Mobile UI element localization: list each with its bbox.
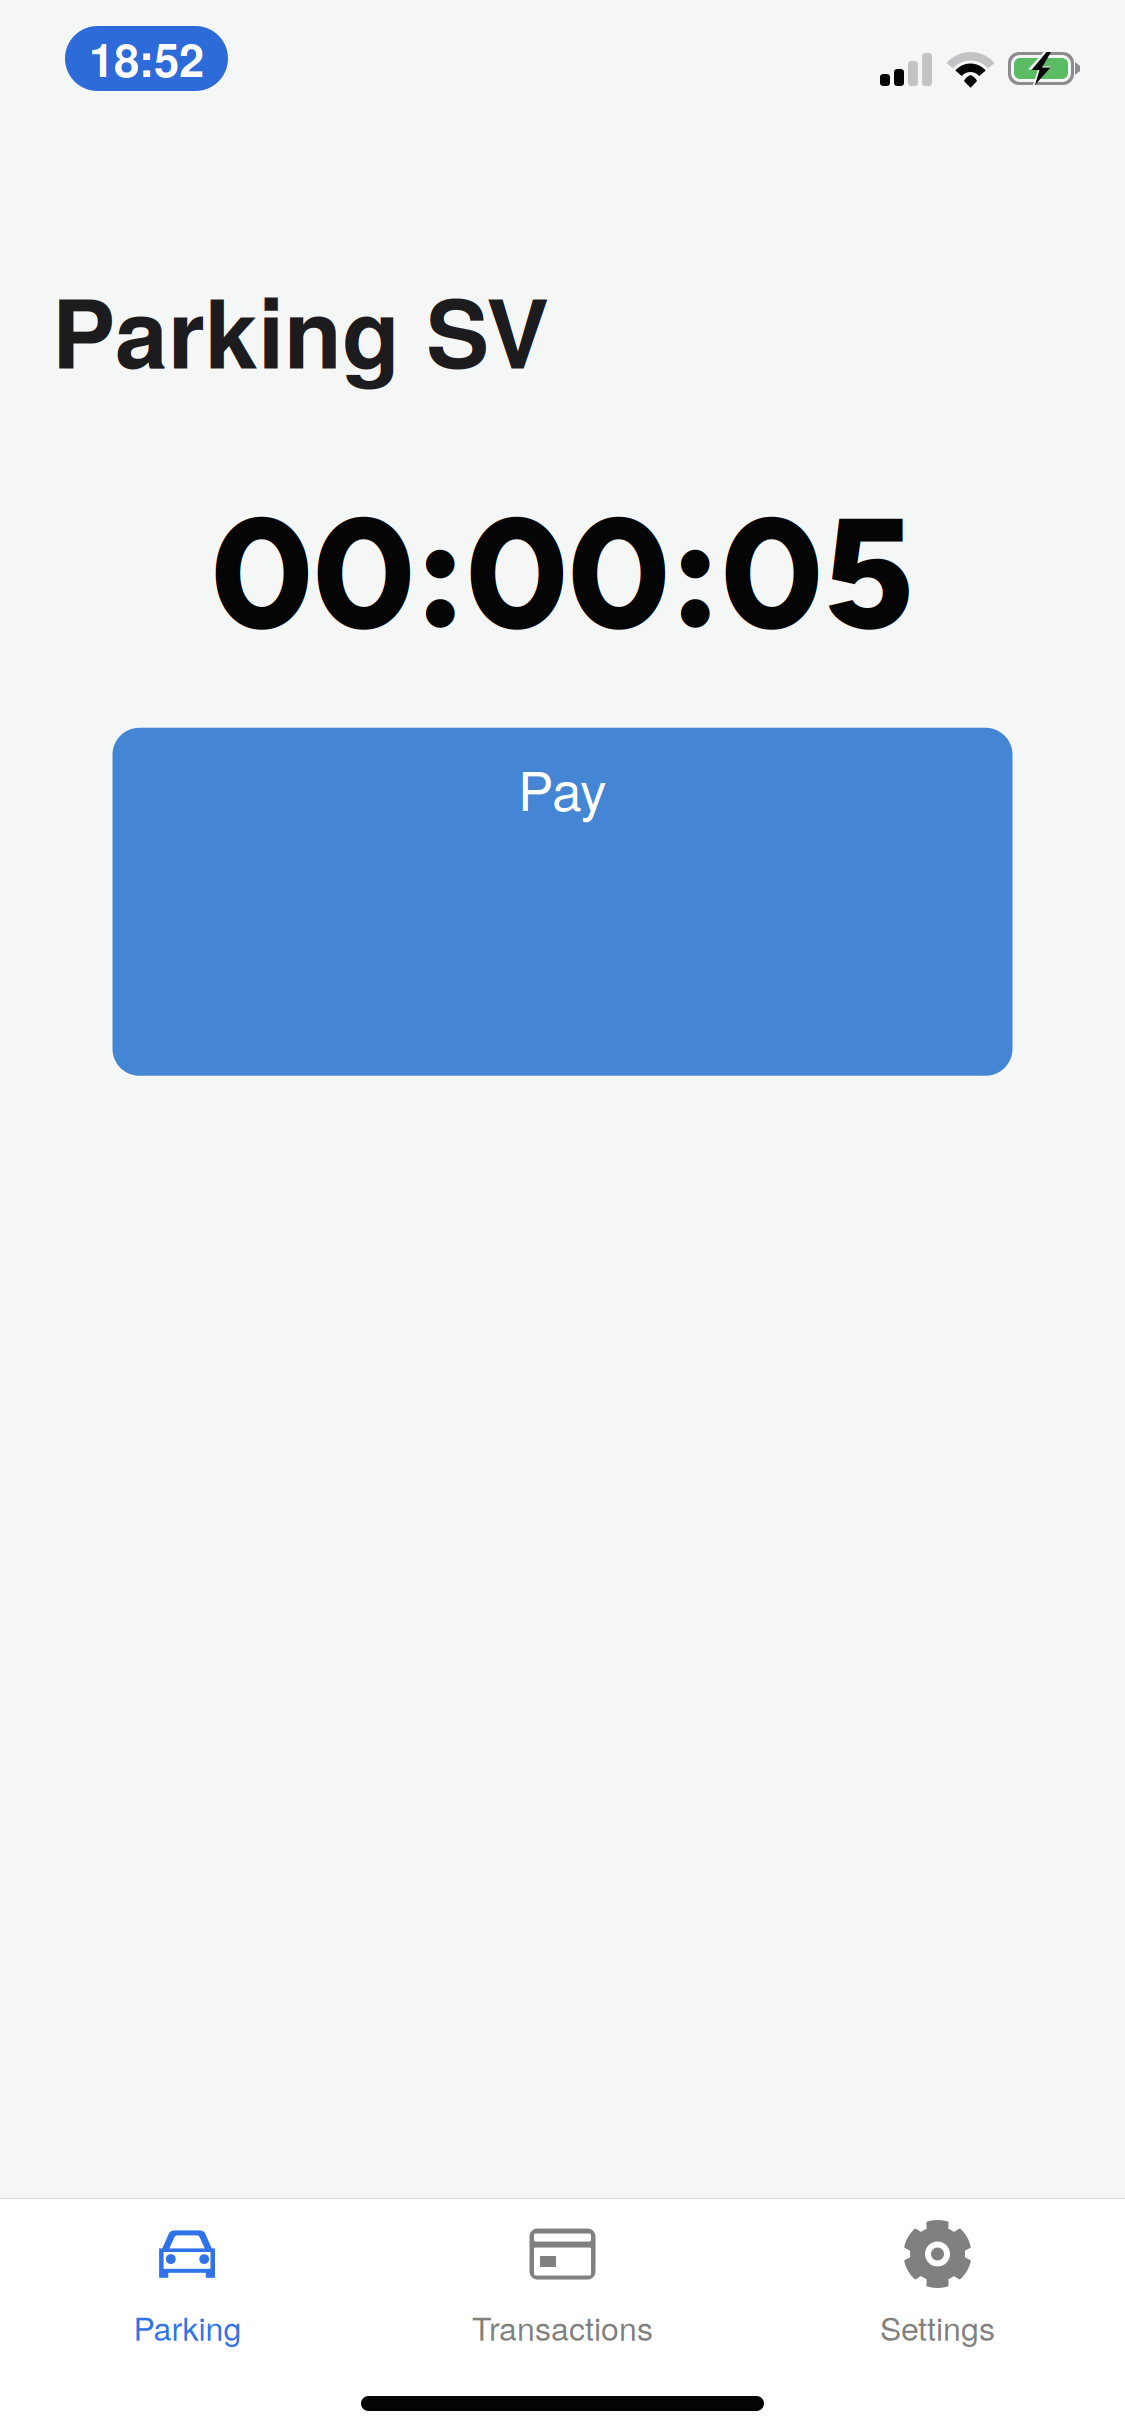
button[interactable]: Settings	[750, 2199, 1125, 2362]
staticText: 00:00:05	[211, 480, 914, 667]
staticText: Parking SV	[52, 262, 549, 398]
button[interactable]: Pay	[112, 728, 1012, 1076]
button[interactable]: Parking	[0, 2199, 375, 2362]
staticText: Transactions	[472, 2304, 653, 2350]
staticText: Parking	[133, 2304, 241, 2350]
staticText: Settings	[880, 2304, 995, 2350]
staticText: 18:52	[89, 26, 204, 91]
button[interactable]: Transactions	[375, 2199, 750, 2362]
staticText: Pay	[518, 750, 607, 826]
